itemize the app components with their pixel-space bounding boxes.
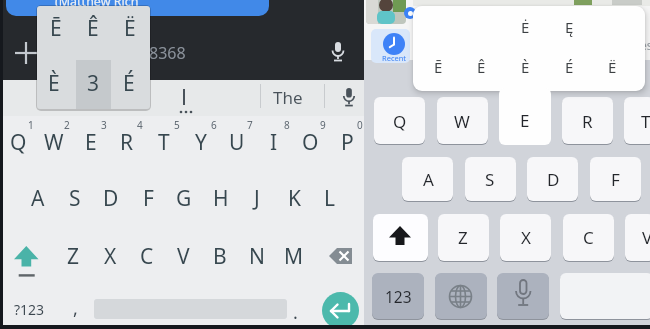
button[interactable]: Ē: [39, 11, 73, 45]
staticText: U: [229, 128, 245, 157]
staticText: 7: [247, 118, 253, 132]
button[interactable]: [563, 214, 614, 261]
button[interactable]: .: [283, 300, 307, 324]
button[interactable]: P: [329, 127, 365, 157]
button[interactable]: The: [253, 84, 323, 110]
button[interactable]: [560, 273, 650, 319]
staticText: W: [454, 110, 470, 133]
staticText: P: [341, 128, 354, 157]
button[interactable]: [372, 273, 424, 319]
button[interactable]: [527, 157, 578, 201]
staticText: A: [423, 168, 434, 191]
staticText: M: [284, 242, 304, 271]
button[interactable]: [465, 157, 516, 201]
staticText: ?123: [14, 300, 45, 319]
button[interactable]: È: [508, 52, 542, 82]
button[interactable]: [8, 240, 44, 280]
staticText: 4: [137, 118, 143, 132]
button[interactable]: [14, 41, 38, 65]
button[interactable]: Ė: [508, 12, 542, 42]
button[interactable]: [322, 292, 359, 329]
staticText: S: [69, 184, 81, 213]
button[interactable]: [371, 29, 410, 63]
button[interactable]: L: [312, 183, 348, 213]
button[interactable]: I: [256, 127, 292, 157]
staticText: 0: [357, 118, 363, 132]
button[interactable]: J: [239, 183, 275, 213]
staticText: É: [123, 69, 135, 98]
button[interactable]: U: [219, 127, 255, 157]
staticText: I: [270, 128, 278, 157]
button[interactable]: [374, 97, 425, 144]
button[interactable]: ?123: [4, 297, 54, 321]
staticText: C: [140, 242, 154, 271]
button[interactable]: T: [146, 127, 182, 157]
button[interactable]: Z: [55, 241, 91, 271]
staticText: C: [583, 226, 594, 249]
staticText: Z: [458, 226, 468, 249]
button[interactable]: [435, 273, 487, 319]
button[interactable]: V: [165, 241, 201, 271]
staticText: ,: [73, 296, 78, 320]
button[interactable]: [500, 214, 551, 261]
button[interactable]: [402, 157, 453, 201]
button[interactable]: 3: [76, 66, 110, 100]
staticText: R: [582, 110, 593, 133]
button[interactable]: H: [203, 183, 239, 213]
button[interactable]: È: [37, 66, 71, 100]
button[interactable]: [6, 0, 269, 16]
button[interactable]: K: [276, 183, 312, 213]
button[interactable]: É: [552, 52, 586, 82]
staticText: Q: [10, 128, 27, 157]
button[interactable]: [438, 214, 489, 261]
button[interactable]: Ę: [552, 12, 586, 42]
button[interactable]: E: [73, 127, 109, 157]
button[interactable]: Y: [183, 127, 219, 157]
staticText: X: [521, 226, 531, 249]
staticText: V: [642, 226, 650, 249]
button[interactable]: [366, 0, 406, 24]
button[interactable]: [497, 273, 549, 319]
button[interactable]: F: [130, 183, 166, 213]
button[interactable]: [373, 214, 428, 261]
button[interactable]: D: [93, 183, 129, 213]
button[interactable]: [590, 157, 641, 201]
button[interactable]: S: [57, 183, 93, 213]
button[interactable]: ,: [63, 296, 87, 320]
staticText: O: [302, 128, 319, 157]
staticText: L: [324, 184, 336, 213]
staticText: F: [143, 184, 154, 213]
button[interactable]: M: [276, 241, 312, 271]
button[interactable]: Q: [0, 127, 36, 157]
staticText: J: [254, 184, 260, 213]
button[interactable]: C: [129, 241, 165, 271]
staticText: Ę: [565, 17, 574, 37]
button[interactable]: O: [292, 127, 328, 157]
button[interactable]: Ë: [595, 52, 629, 82]
button[interactable]: [328, 246, 354, 266]
button[interactable]: [625, 214, 650, 261]
button[interactable]: Ë: [113, 11, 147, 45]
button[interactable]: [499, 88, 551, 145]
button[interactable]: [153, 84, 213, 110]
button[interactable]: [624, 97, 650, 144]
button[interactable]: Ê: [464, 52, 498, 82]
button[interactable]: Ê: [76, 11, 110, 45]
staticText: E: [520, 109, 530, 132]
button[interactable]: B: [202, 241, 238, 271]
button[interactable]: N: [239, 241, 275, 271]
staticText: È: [48, 69, 60, 98]
button[interactable]: É: [112, 66, 146, 100]
button[interactable]: R: [109, 127, 145, 157]
button[interactable]: [437, 97, 488, 144]
staticText: N: [249, 242, 265, 271]
button[interactable]: W: [36, 127, 72, 157]
staticText: Z: [67, 242, 80, 271]
button[interactable]: X: [92, 241, 128, 271]
button[interactable]: G: [166, 183, 202, 213]
button[interactable]: [562, 97, 613, 144]
button[interactable]: Ē: [421, 52, 455, 82]
staticText: V: [177, 242, 190, 271]
button[interactable]: A: [20, 183, 56, 213]
